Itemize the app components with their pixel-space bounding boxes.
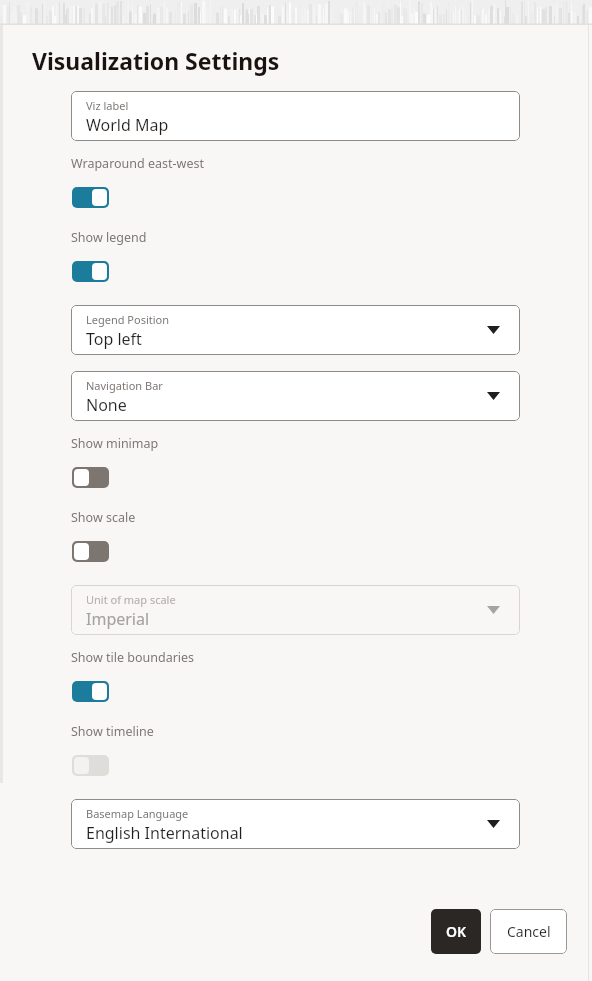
- button[interactable]: Show timeline: [72, 755, 109, 776]
- staticText: World Map: [86, 114, 169, 136]
- staticText: Show minimap: [71, 435, 159, 452]
- staticText: Show timeline: [71, 723, 154, 740]
- staticText: English International: [86, 822, 243, 844]
- button[interactable]: Show minimap: [72, 467, 109, 488]
- staticText: Cancel: [507, 922, 551, 941]
- staticText: Show scale: [71, 509, 136, 526]
- staticText: OK: [446, 922, 467, 941]
- staticText: None: [86, 394, 127, 416]
- button[interactable]: Legend Position: [71, 305, 520, 355]
- button[interactable]: Basemap Language: [71, 799, 520, 849]
- button[interactable]: Show legend: [72, 261, 109, 282]
- staticText: Basemap Language: [86, 806, 189, 821]
- staticText: Navigation Bar: [86, 378, 163, 393]
- button[interactable]: Wraparound east-west: [72, 187, 109, 208]
- button[interactable]: Navigation Bar: [71, 371, 520, 421]
- button[interactable]: Show tile boundaries: [72, 681, 109, 702]
- staticText: Imperial: [86, 608, 150, 630]
- staticText: Legend Position: [86, 312, 170, 327]
- button[interactable]: OK: [431, 909, 481, 954]
- button[interactable]: Viz label: [71, 91, 520, 141]
- staticText: Viz label: [86, 98, 129, 113]
- button[interactable]: Show scale: [72, 541, 109, 562]
- staticText: Unit of map scale: [86, 592, 176, 607]
- button[interactable]: Unit of map scale: [71, 585, 520, 635]
- staticText: Visualization Settings: [32, 45, 280, 76]
- button[interactable]: Cancel: [490, 909, 567, 954]
- staticText: Top left: [86, 328, 142, 350]
- staticText: Show tile boundaries: [71, 649, 195, 666]
- staticText: Show legend: [71, 229, 147, 246]
- staticText: Wraparound east-west: [71, 155, 204, 172]
